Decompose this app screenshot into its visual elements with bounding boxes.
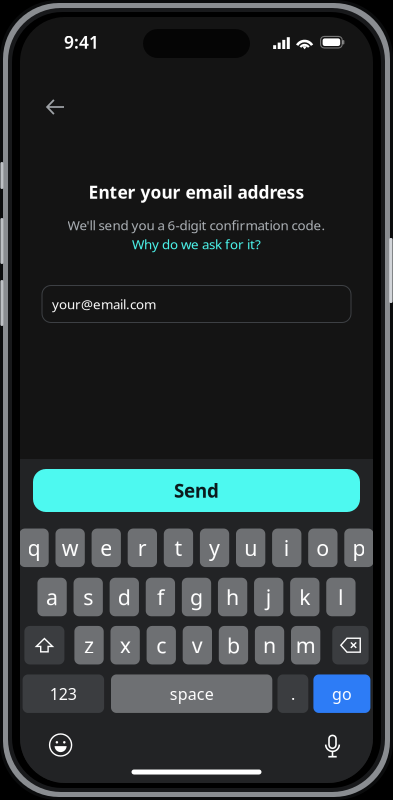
button[interactable]: p <box>344 528 374 567</box>
staticText: s <box>83 583 93 611</box>
staticText: m <box>296 631 316 659</box>
staticText: n <box>263 631 276 659</box>
staticText: g <box>190 583 203 611</box>
button[interactable]: z <box>74 626 104 664</box>
staticText: c <box>156 631 166 659</box>
button[interactable]: Send <box>33 469 360 512</box>
button[interactable]: g <box>182 578 211 616</box>
staticText: a <box>46 583 58 611</box>
staticText: 9:41 <box>64 30 99 53</box>
button[interactable]: f <box>146 578 175 616</box>
staticText: h <box>226 583 239 611</box>
button[interactable]: 123 <box>23 674 104 713</box>
staticText: t <box>174 534 182 562</box>
button[interactable]: go <box>313 674 370 713</box>
button[interactable]: i <box>272 528 301 567</box>
button[interactable]: j <box>254 578 283 616</box>
staticText: . <box>291 683 295 704</box>
button[interactable]: k <box>290 578 319 616</box>
button[interactable]: Shift <box>24 626 64 664</box>
button[interactable]: b <box>219 626 248 664</box>
button[interactable]: Dictate <box>313 726 353 766</box>
button[interactable]: s <box>73 578 103 616</box>
staticText: p <box>352 534 365 562</box>
staticText: f <box>157 583 164 611</box>
staticText: o <box>316 534 329 562</box>
staticText: r <box>138 534 147 562</box>
staticText: x <box>120 631 131 659</box>
button[interactable]: Delete <box>332 626 369 664</box>
button[interactable]: c <box>147 626 176 664</box>
button[interactable]: o <box>308 528 337 567</box>
button[interactable]: q <box>19 528 49 567</box>
staticText: k <box>299 583 310 611</box>
button[interactable]: h <box>218 578 247 616</box>
staticText: d <box>118 583 131 611</box>
staticText: l <box>338 583 344 611</box>
staticText: e <box>100 534 112 562</box>
staticText: We'll send you a 6-digit confirmation co… <box>67 216 325 234</box>
button[interactable]: m <box>291 626 320 664</box>
button[interactable]: your@email.com <box>42 285 351 322</box>
staticText: y <box>209 534 220 562</box>
staticText: u <box>244 534 257 562</box>
button[interactable]: . <box>277 674 308 713</box>
button[interactable]: v <box>183 626 212 664</box>
staticText: Why do we ask for it? <box>132 235 261 253</box>
button[interactable]: r <box>128 528 157 567</box>
button[interactable]: space <box>111 674 272 713</box>
staticText: v <box>192 631 203 659</box>
button[interactable]: Emoji <box>41 725 81 765</box>
staticText: i <box>284 534 290 562</box>
button[interactable]: Back <box>33 85 77 129</box>
button[interactable]: d <box>110 578 139 616</box>
staticText: q <box>27 534 40 562</box>
staticText: go <box>332 683 352 704</box>
button[interactable]: y <box>200 528 229 567</box>
staticText: Send <box>174 478 219 503</box>
button[interactable]: u <box>236 528 265 567</box>
button[interactable]: n <box>255 626 284 664</box>
button[interactable]: a <box>37 578 67 616</box>
staticText: Enter your email address <box>88 180 304 203</box>
staticText: w <box>62 534 79 562</box>
staticText: b <box>227 631 240 659</box>
staticText: space <box>170 683 214 704</box>
staticText: z <box>84 631 94 659</box>
staticText: 123 <box>50 683 77 704</box>
button[interactable]: x <box>110 626 140 664</box>
button[interactable]: l <box>326 578 355 616</box>
button[interactable]: Why do we ask for it? <box>132 235 261 253</box>
staticText: j <box>266 583 272 611</box>
button[interactable]: w <box>55 528 85 567</box>
staticText: your@email.com <box>52 295 156 313</box>
button[interactable]: e <box>92 528 121 567</box>
button[interactable]: t <box>164 528 193 567</box>
